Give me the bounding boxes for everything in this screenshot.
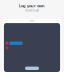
button[interactable] — [5, 41, 60, 45]
staticText: Log your own — [19, 3, 45, 8]
staticText: download — [25, 9, 39, 12]
button[interactable]: Continue — [25, 67, 39, 70]
